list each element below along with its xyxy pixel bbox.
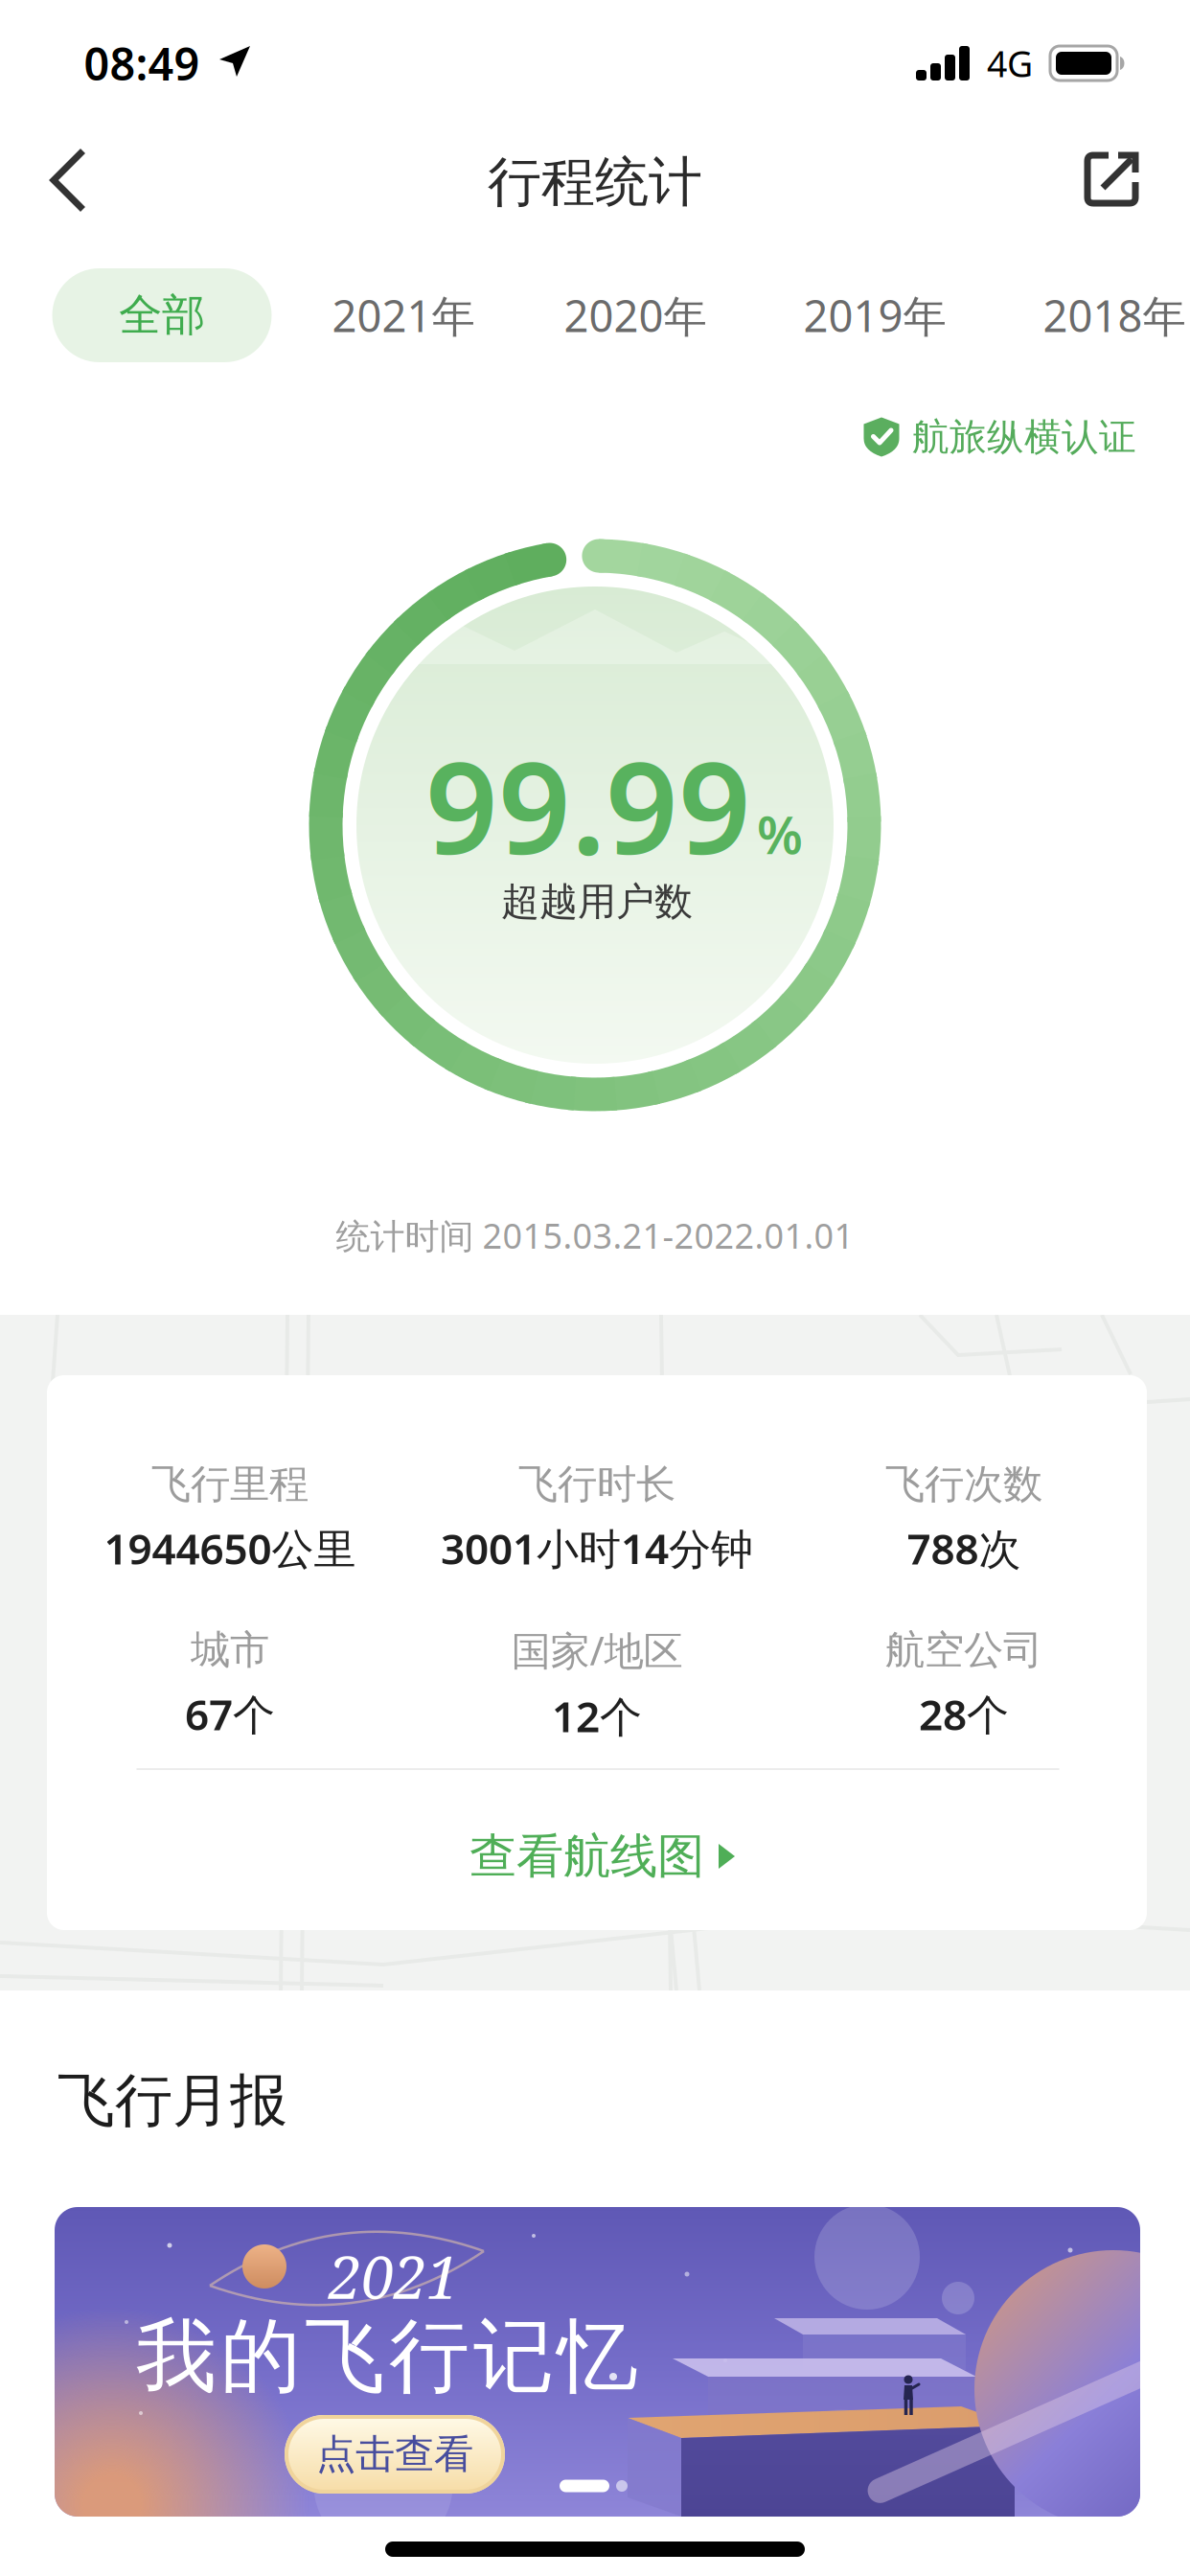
button[interactable]: 2020年 [520, 268, 750, 362]
staticText: 行程统计 [488, 149, 702, 215]
button[interactable]: 全部 [52, 268, 272, 362]
staticText: 2019年 [803, 286, 946, 344]
staticText: 28个 [919, 1686, 1009, 1742]
button[interactable]: 查看航线图 [469, 1827, 738, 1885]
staticText: 1944650公里 [104, 1520, 356, 1576]
staticText: 788次 [907, 1520, 1021, 1576]
staticText: 查看航线图 [469, 1827, 704, 1885]
staticText: 超越用户数 [501, 878, 693, 925]
staticText: 全部 [119, 289, 205, 342]
button[interactable]: 分享 [0, 134, 1190, 240]
staticText: 我的飞行记忆 [136, 2307, 638, 2406]
staticText: 飞行次数 [885, 1460, 1042, 1509]
button[interactable]: 返回 [0, 134, 1190, 240]
staticText: 点击查看 [316, 2430, 473, 2479]
staticText: 99.99 [425, 721, 751, 889]
staticText: 统计时间 2015.03.21-2022.01.01 [336, 1212, 854, 1258]
staticText: 67个 [185, 1686, 275, 1742]
button[interactable]: 2021 我的飞行记忆 点击查看 [55, 2207, 1140, 2517]
button[interactable]: 2019年 [760, 268, 990, 362]
button[interactable]: 2021年 [288, 268, 518, 362]
staticText: 航空公司 [885, 1626, 1042, 1674]
staticText: 12个 [552, 1688, 642, 1744]
staticText: 4G [987, 39, 1033, 87]
staticText: 3001小时14分钟 [441, 1520, 753, 1576]
staticText: 城市 [191, 1626, 269, 1674]
button[interactable]: 2018年 [999, 268, 1190, 362]
staticText: 国家/地区 [511, 1624, 683, 1676]
staticText: 2021年 [332, 286, 475, 344]
staticText: 2018年 [1043, 286, 1186, 344]
staticText: 飞行里程 [151, 1460, 309, 1509]
staticText: 航旅纵横认证 [912, 414, 1136, 460]
staticText: 08:49 [84, 34, 200, 93]
staticText: % [757, 799, 803, 869]
staticText: 飞行时长 [518, 1460, 675, 1509]
staticText: 飞行月报 [57, 2065, 287, 2136]
staticText: 2021 [329, 2236, 459, 2316]
staticText: 2020年 [564, 286, 707, 344]
